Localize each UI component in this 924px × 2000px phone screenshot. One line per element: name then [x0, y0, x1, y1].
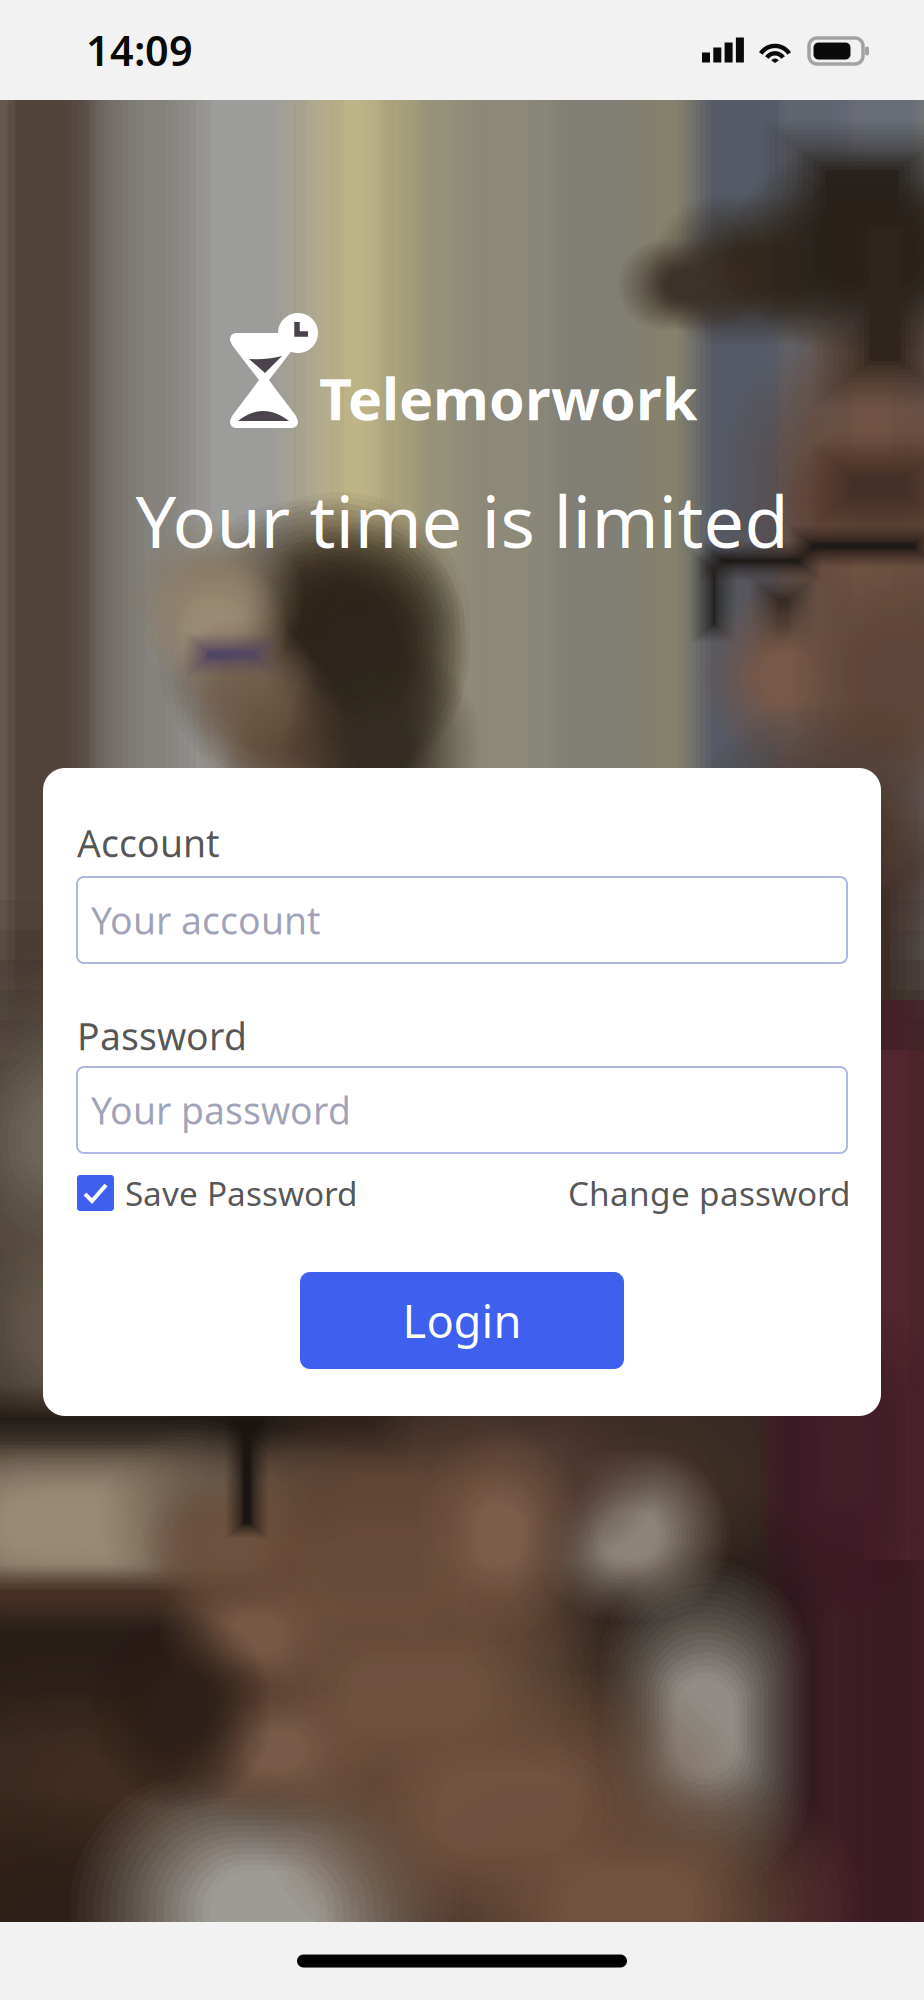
staticText: Your account	[91, 895, 320, 945]
staticText: 14:09	[86, 23, 193, 77]
staticText: Your time is limited	[135, 472, 788, 568]
staticText: Account	[77, 818, 219, 868]
staticText: Login	[402, 1290, 521, 1351]
staticText: Change password	[568, 1171, 851, 1215]
button[interactable]: Save Password	[77, 1171, 417, 1215]
button[interactable]: Change password	[451, 1171, 851, 1215]
staticText: Password	[77, 1011, 247, 1061]
staticText: Your password	[91, 1085, 351, 1135]
staticText: Telemorwork	[319, 360, 698, 436]
staticText: Save Password	[125, 1171, 358, 1215]
button[interactable]: Login	[300, 1272, 624, 1369]
